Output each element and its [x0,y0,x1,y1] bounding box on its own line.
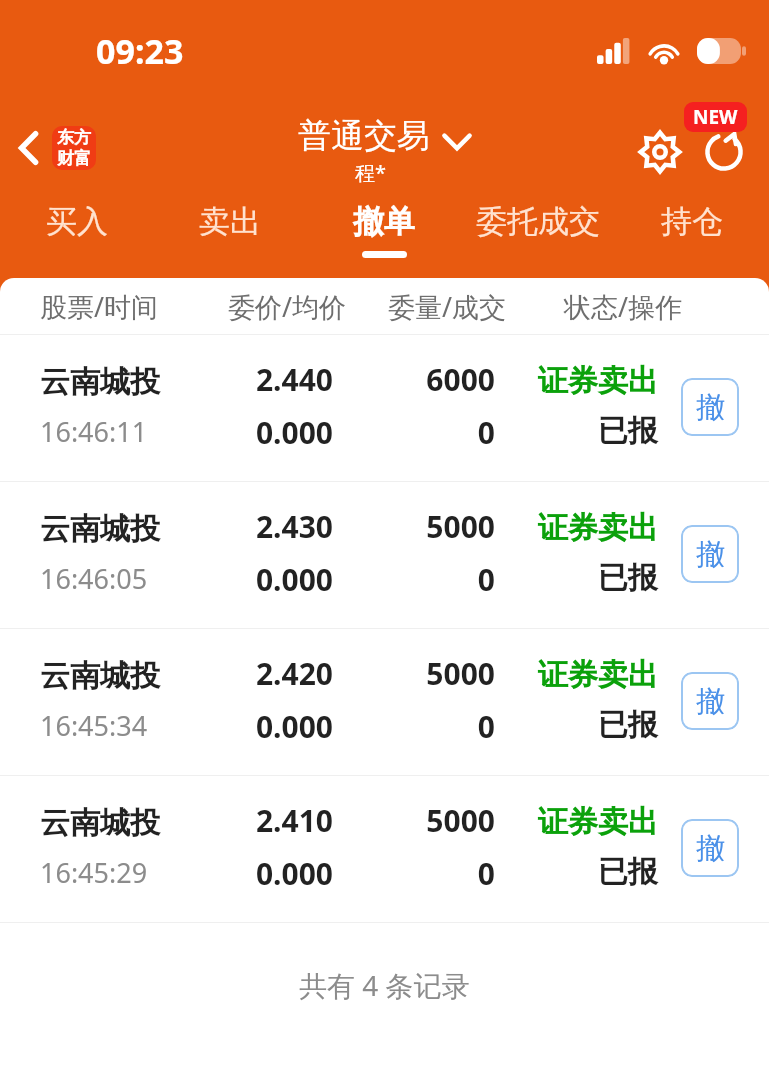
staticText: 09:23 [96,28,184,74]
staticText: 已报 [598,559,658,597]
button[interactable]: 撤 [681,819,739,877]
button[interactable]: 撤 [681,672,739,730]
button[interactable]: 撤 [681,378,739,436]
staticText: 共有 4 条记录 [299,966,470,1004]
staticText: 云南城投 [40,510,160,548]
staticText: 0 [477,706,495,747]
staticText: 东方 [57,127,91,148]
staticText: 2.410 [255,800,333,841]
button[interactable]: Refresh [695,123,753,181]
staticText: 5000 [426,506,495,547]
staticText: 撤单 [353,202,415,241]
staticText: 已报 [598,853,658,891]
staticText: 撤 [696,536,725,573]
staticText: 0 [477,559,495,600]
staticText: 卖出 [199,202,261,241]
staticText: 16:46:11 [40,413,148,450]
staticText: 委量/成交 [388,288,507,325]
button[interactable]: Settings [631,123,689,181]
staticText: 持仓 [661,202,723,241]
staticText: 5000 [426,653,495,694]
staticText: 撤 [696,389,725,426]
staticText: 16:45:29 [40,854,148,891]
button[interactable]: 云南城投 [0,335,769,481]
staticText: NEW [693,104,738,130]
staticText: 证券卖出 [538,656,658,694]
staticText: 2.440 [255,359,333,400]
staticText: 5000 [426,800,495,841]
staticText: 撤 [696,683,725,720]
staticText: 财富 [57,148,91,169]
button[interactable]: 撤 [681,525,739,583]
staticText: 证券卖出 [538,803,658,841]
staticText: 已报 [598,412,658,450]
staticText: 证券卖出 [538,509,658,547]
staticText: 状态/操作 [564,288,683,325]
button[interactable]: 云南城投 [0,629,769,775]
staticText: 2.430 [255,506,333,547]
button[interactable]: 卖出 [153,198,307,278]
button[interactable]: 普通交易 [298,115,472,186]
staticText: 已报 [598,706,658,744]
button[interactable]: 云南城投 [0,482,769,628]
staticText: 0.000 [255,853,333,894]
staticText: 程* [355,159,387,186]
staticText: 6000 [426,359,495,400]
staticText: 0.000 [255,706,333,747]
staticText: 买入 [46,202,108,241]
staticText: 云南城投 [40,804,160,842]
button[interactable]: 云南城投 [0,776,769,922]
staticText: 0.000 [255,559,333,600]
button[interactable]: 持仓 [615,198,769,278]
staticText: 16:45:34 [40,707,148,744]
staticText: 16:46:05 [40,560,148,597]
staticText: 云南城投 [40,363,160,401]
staticText: 委价/均价 [228,288,347,325]
staticText: 2.420 [255,653,333,694]
button[interactable]: 委托成交 [461,198,615,278]
staticText: 0.000 [255,412,333,453]
staticText: 证券卖出 [538,362,658,400]
staticText: 撤 [696,830,725,867]
staticText: 普通交易 [298,115,430,157]
button[interactable]: 撤单 [307,198,461,278]
button[interactable]: 买入 [0,198,153,278]
staticText: 0 [477,412,495,453]
staticText: 委托成交 [476,202,600,241]
staticText: 云南城投 [40,657,160,695]
staticText: 股票/时间 [40,288,159,325]
staticText: 0 [477,853,495,894]
button[interactable]: Back [8,118,106,178]
